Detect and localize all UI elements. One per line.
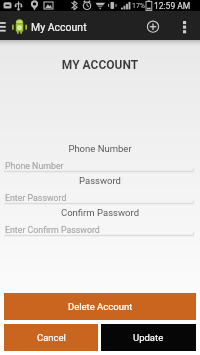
staticText: Delete Account <box>68 301 133 312</box>
staticText: Enter Password <box>5 193 67 203</box>
button[interactable]: Open navigation drawer <box>0 11 10 40</box>
staticText: 12:59 AM <box>154 1 191 11</box>
staticText: 17% <box>132 2 145 10</box>
staticText: MY ACCOUNT <box>0 58 200 72</box>
staticText: Password <box>0 175 200 186</box>
staticText: Phone Number <box>5 161 64 171</box>
button[interactable]: Delete Account <box>4 293 196 320</box>
button[interactable]: More options <box>173 11 195 40</box>
button[interactable]: Cancel <box>4 324 98 351</box>
staticText: Update <box>133 332 164 343</box>
button[interactable]: Update <box>101 324 196 351</box>
staticText: Confirm Password <box>0 207 200 218</box>
staticText: Cancel <box>37 332 66 343</box>
staticText: Enter Confirm Password <box>5 225 100 235</box>
staticText: Phone Number <box>0 143 200 154</box>
button[interactable]: Add account <box>141 11 165 40</box>
staticText: My Account <box>31 21 87 33</box>
